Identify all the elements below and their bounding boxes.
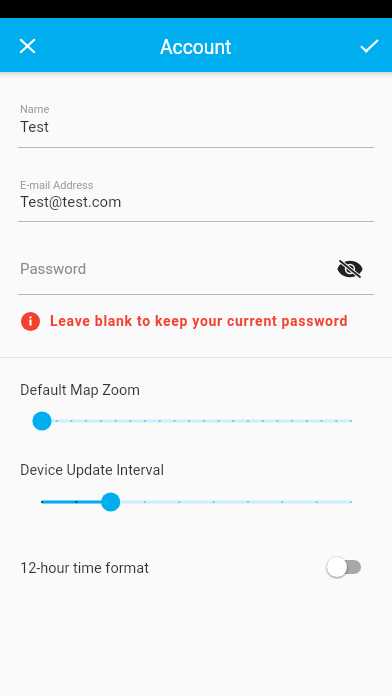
staticText: Device Update Interval	[20, 462, 164, 479]
button[interactable]	[0, 411, 392, 431]
button[interactable]	[0, 492, 392, 512]
button[interactable]: Save	[353, 30, 385, 62]
staticText: E-mail Address	[20, 179, 94, 192]
staticText: Test@test.com	[20, 193, 122, 211]
button[interactable]: 12-hour time format	[0, 550, 392, 584]
staticText: Name	[20, 103, 50, 116]
button[interactable]: Name	[0, 93, 392, 148]
staticText: Leave blank to keep your current passwor…	[50, 313, 349, 329]
button[interactable]: Close	[11, 30, 43, 62]
staticText: Test	[20, 118, 49, 136]
staticText: Default Map Zoom	[20, 382, 141, 399]
staticText: Account	[160, 36, 232, 59]
button[interactable]: Password	[0, 249, 392, 295]
button[interactable]: E-mail Address	[0, 169, 392, 222]
button[interactable]: 12-hour time format toggle	[325, 555, 361, 579]
staticText: 12-hour time format	[20, 560, 149, 577]
button[interactable]: Show password	[337, 256, 363, 282]
staticText: Password	[20, 260, 87, 278]
